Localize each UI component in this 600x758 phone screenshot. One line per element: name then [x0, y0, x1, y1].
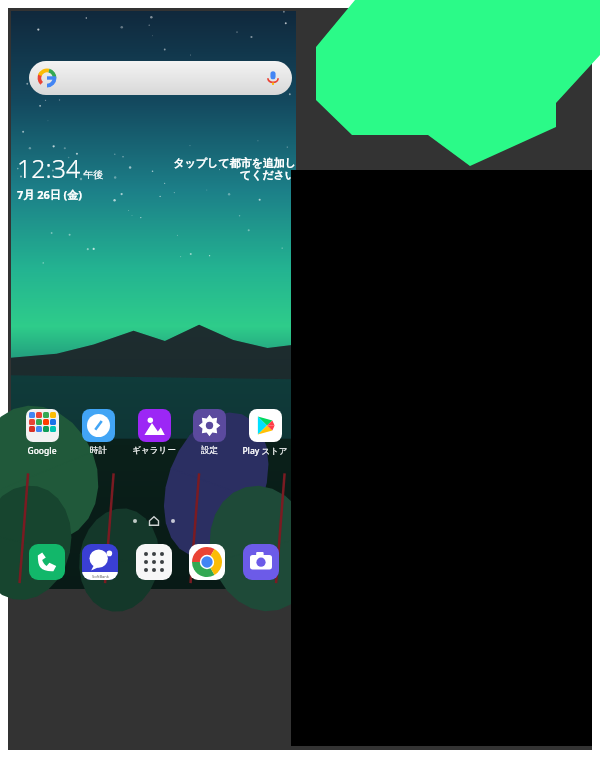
staticText: SoftBank [92, 574, 109, 579]
button[interactable]: Google search [29, 61, 292, 95]
staticText: 7月 26日 (金) [17, 187, 83, 202]
button[interactable]: Play ストア [240, 409, 290, 457]
button[interactable]: ギャラリー [129, 409, 179, 456]
button[interactable]: 時計 [73, 409, 123, 456]
button[interactable]: 設定 [184, 409, 234, 456]
button[interactable]: Chrome [189, 544, 225, 580]
staticText: タップして都市を追加してください [166, 156, 296, 183]
staticText: 時計 [90, 445, 107, 456]
staticText: Play ストア [242, 445, 288, 457]
staticText: 設定 [201, 445, 218, 456]
button[interactable]: All apps [136, 544, 172, 580]
staticText: 12:34 [17, 151, 81, 185]
button[interactable]: Google [17, 409, 67, 457]
staticText: 午後 [83, 168, 103, 181]
staticText: ギャラリー [132, 445, 176, 456]
button[interactable]: Phone [29, 544, 65, 580]
button[interactable]: Messages [82, 544, 118, 580]
button[interactable]: タップして都市を追加してください [166, 156, 296, 183]
staticText: Google [27, 445, 57, 457]
button[interactable]: Camera [243, 544, 279, 580]
